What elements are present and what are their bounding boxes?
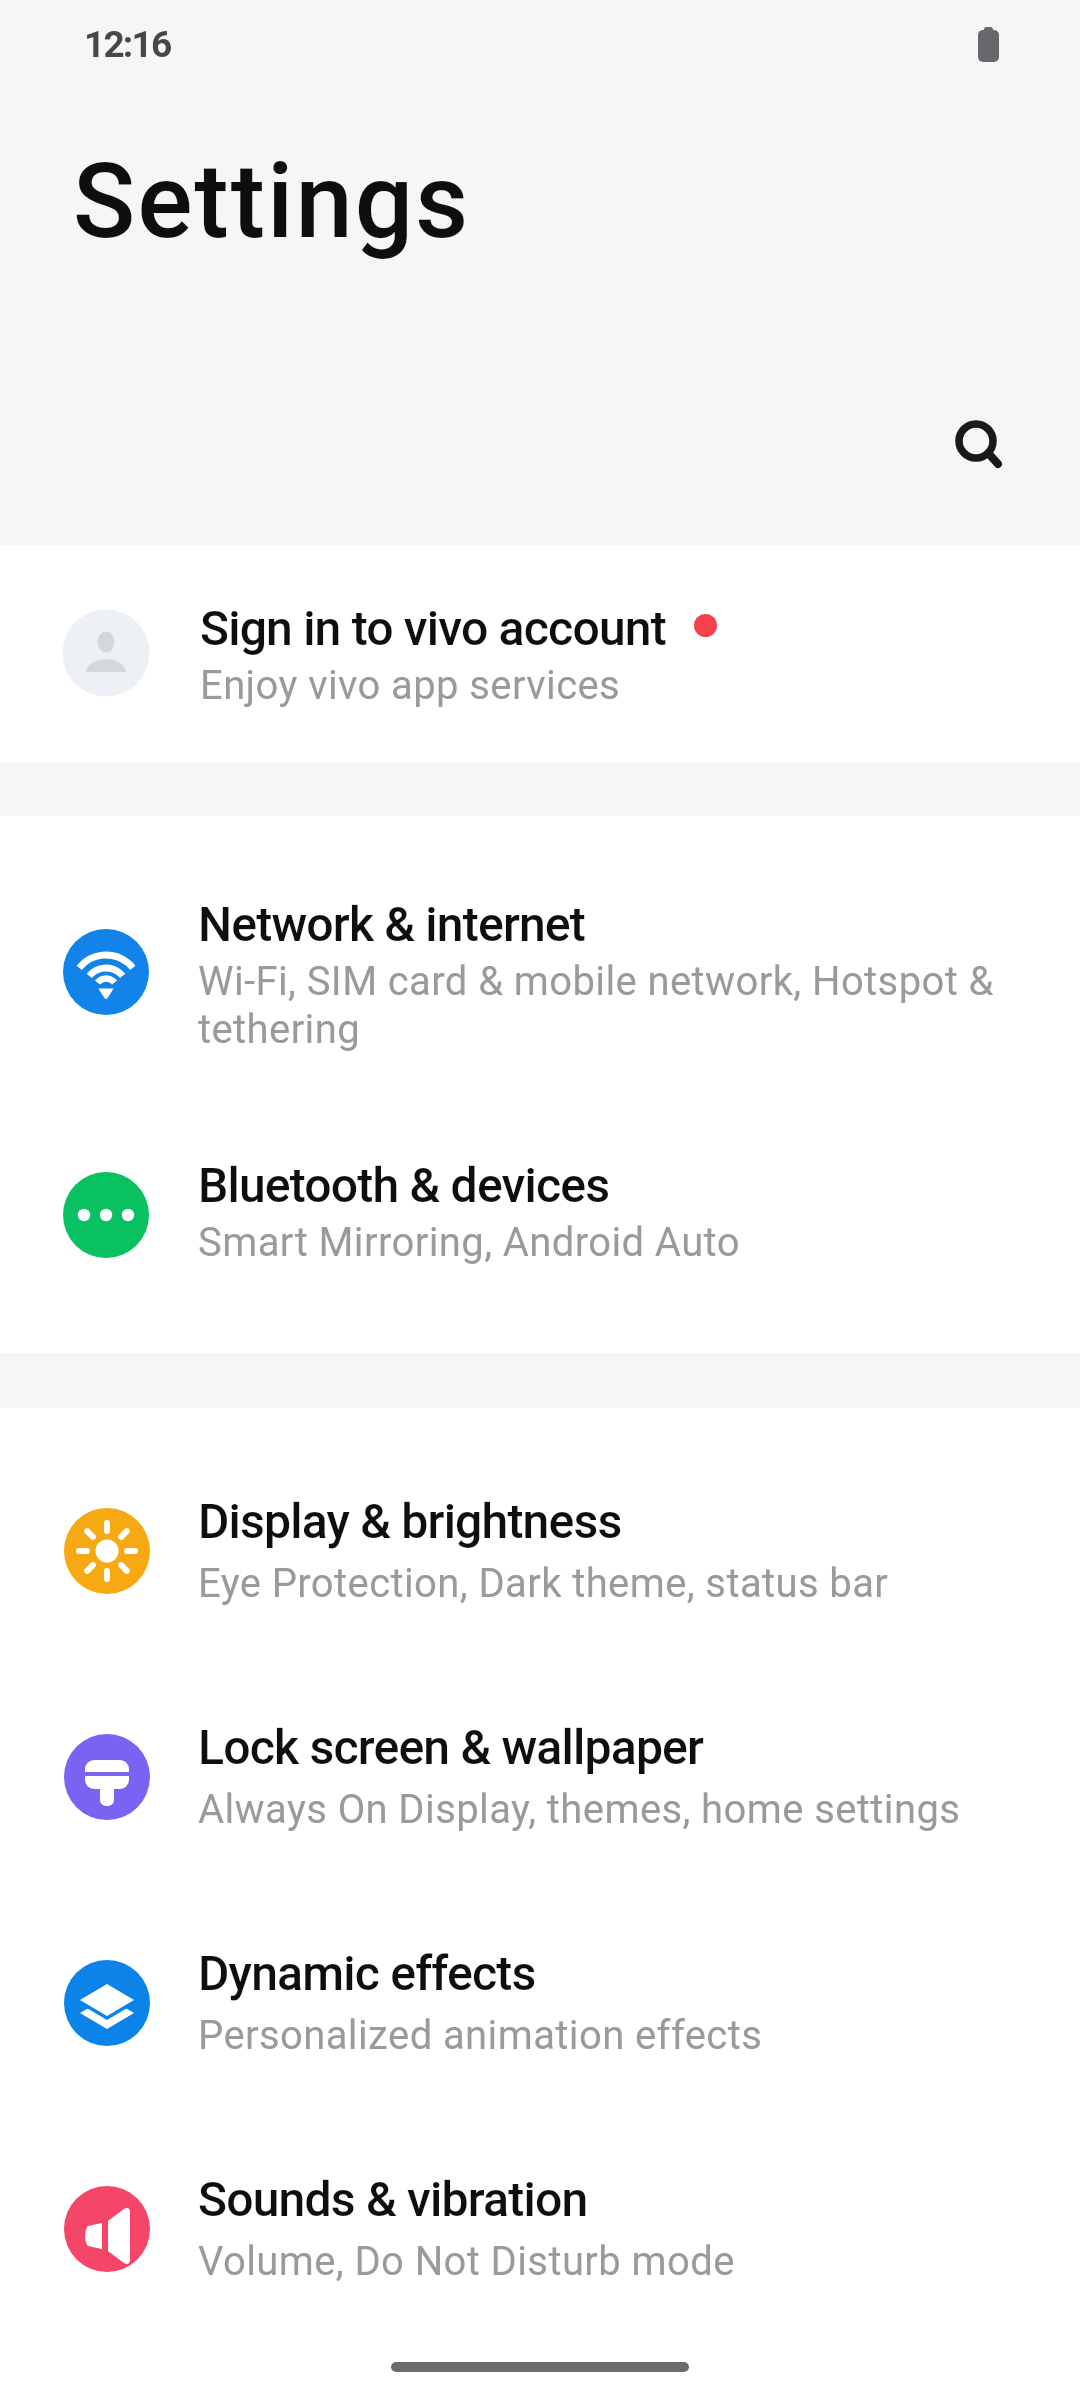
staticText: Smart Mirroring, Android Auto xyxy=(198,1219,740,1266)
button[interactable] xyxy=(0,2116,1080,2342)
staticText: Eye Protection, Dark theme, status bar xyxy=(198,1560,889,1607)
staticText: Settings xyxy=(73,141,471,262)
staticText: Network & internet xyxy=(198,896,585,952)
button[interactable] xyxy=(0,1104,1080,1353)
staticText: 12:16 xyxy=(84,23,171,66)
staticText: Lock screen & wallpaper xyxy=(198,1719,704,1775)
staticText: Always On Display, themes, home settings xyxy=(198,1786,961,1833)
staticText: tethering xyxy=(198,1006,361,1053)
button[interactable] xyxy=(0,846,1080,1100)
button[interactable] xyxy=(0,1890,1080,2116)
staticText: Bluetooth & devices xyxy=(198,1157,610,1213)
staticText: Sounds & vibration xyxy=(198,2171,588,2227)
staticText: Sign in to vivo account xyxy=(200,600,666,656)
staticText: Dynamic effects xyxy=(198,1945,536,2001)
staticText: Volume, Do Not Disturb mode xyxy=(198,2238,735,2285)
button[interactable] xyxy=(0,1438,1080,1664)
staticText: Personalized animation effects xyxy=(198,2012,763,2059)
staticText: Display & brightness xyxy=(198,1493,622,1549)
button[interactable] xyxy=(0,546,1080,762)
staticText: Wi-Fi, SIM card & mobile network, Hotspo… xyxy=(198,958,994,1005)
button[interactable] xyxy=(0,1664,1080,1890)
staticText: Enjoy vivo app services xyxy=(200,662,621,709)
